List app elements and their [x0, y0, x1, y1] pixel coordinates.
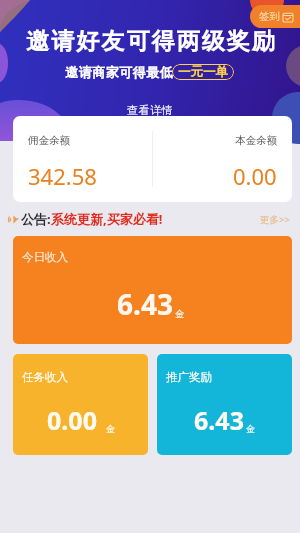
staticText: 邀请好友可得两级奖励: [25, 27, 276, 56]
button[interactable]: 公告:: [0, 208, 300, 230]
button[interactable]: 推广奖励: [157, 354, 292, 455]
button[interactable]: 佣金余额: [13, 116, 152, 202]
staticText: 推广奖励: [166, 370, 212, 384]
button[interactable]: 签到: [250, 5, 300, 28]
staticText: 0.00: [233, 161, 277, 191]
button[interactable]: 今日收入: [13, 236, 292, 344]
staticText: 6.43: [117, 285, 173, 323]
button[interactable]: 任务收入: [13, 354, 148, 455]
staticText: 342.58: [28, 161, 97, 191]
staticText: 本金余额: [235, 134, 277, 147]
staticText: 任务收入: [22, 370, 68, 384]
staticText: 查看详情: [127, 103, 174, 117]
staticText: 0.00: [47, 403, 97, 437]
staticText: 邀请商家可得最低: [65, 64, 173, 80]
staticText: 6.43: [194, 403, 244, 437]
staticText: 更多>>: [260, 213, 290, 226]
staticText: 公告:: [21, 210, 51, 228]
staticText: 今日收入: [22, 250, 68, 264]
staticText: 金: [175, 308, 185, 320]
staticText: 一元一单: [178, 64, 228, 80]
staticText: 佣金余额: [28, 134, 70, 147]
staticText: 金: [106, 423, 115, 434]
staticText: 金: [246, 423, 255, 434]
staticText: 签到: [259, 10, 280, 23]
button[interactable]: 本金余额: [153, 116, 292, 202]
staticText: 系统更新,买家必看!: [51, 210, 163, 228]
